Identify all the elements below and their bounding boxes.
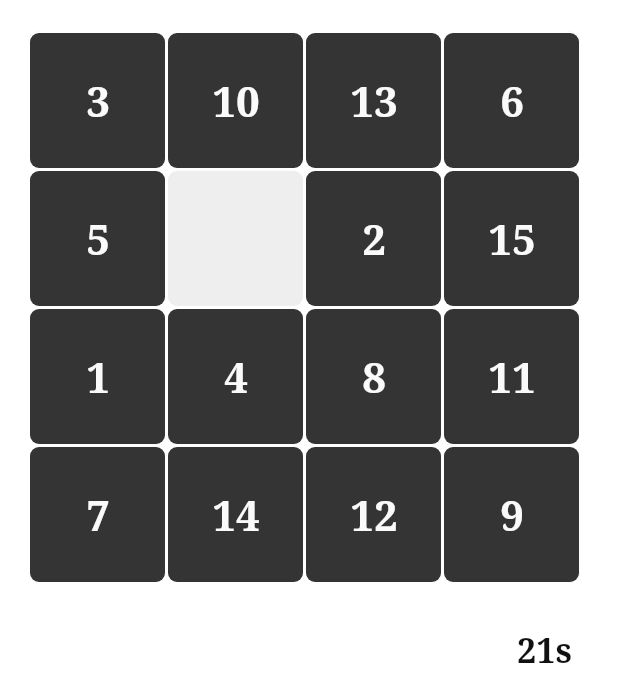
staticText: 7 <box>86 486 110 543</box>
staticText: 11 <box>488 348 536 405</box>
button[interactable]: 1 <box>30 309 165 444</box>
button[interactable]: 6 <box>444 33 579 168</box>
button[interactable]: 8 <box>306 309 441 444</box>
button[interactable]: 21s <box>517 627 572 673</box>
staticText: 9 <box>500 486 524 543</box>
button[interactable]: 7 <box>30 447 165 582</box>
button[interactable]: 14 <box>168 447 303 582</box>
button[interactable]: 9 <box>444 447 579 582</box>
button[interactable]: 11 <box>444 309 579 444</box>
staticText: 3 <box>86 72 110 129</box>
staticText: 4 <box>224 348 248 405</box>
button[interactable]: 15 <box>444 171 579 306</box>
staticText: 21s <box>517 627 572 673</box>
staticText: 6 <box>500 72 524 129</box>
staticText: 10 <box>212 72 260 129</box>
staticText: 5 <box>86 210 110 267</box>
button[interactable]: 4 <box>168 309 303 444</box>
button[interactable]: 13 <box>306 33 441 168</box>
staticText: 14 <box>212 486 260 543</box>
button[interactable]: 3 <box>30 33 165 168</box>
button[interactable]: 10 <box>168 33 303 168</box>
button[interactable]: 12 <box>306 447 441 582</box>
staticText: 15 <box>488 210 536 267</box>
staticText: 8 <box>362 348 386 405</box>
staticText: 13 <box>350 72 398 129</box>
staticText: 2 <box>362 210 386 267</box>
button[interactable]: 5 <box>30 171 165 306</box>
staticText: 1 <box>86 348 110 405</box>
button[interactable]: 2 <box>306 171 441 306</box>
staticText: 12 <box>350 486 398 543</box>
